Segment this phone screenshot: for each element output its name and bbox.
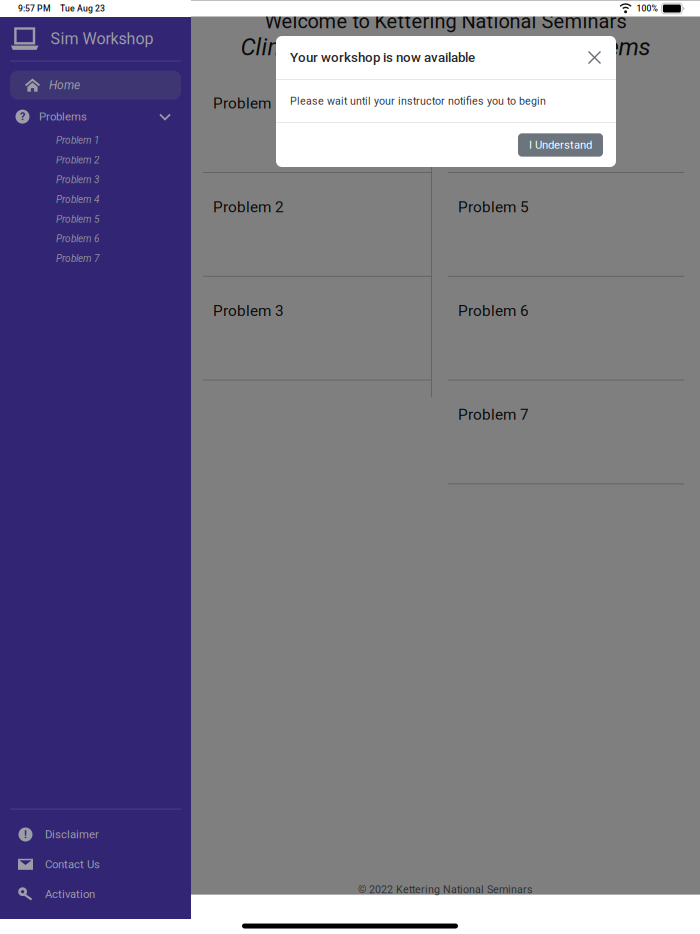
staticText: Problem 6 xyxy=(56,233,99,245)
button[interactable]: Problem 3 xyxy=(203,277,431,381)
staticText: 9:57 PM xyxy=(18,3,51,14)
staticText: ! xyxy=(24,828,27,841)
button[interactable]: Problem 2 xyxy=(203,173,431,277)
staticText: Tue Aug 23 xyxy=(60,3,105,14)
button[interactable]: Home xyxy=(0,71,191,100)
staticText: Problems xyxy=(39,110,87,123)
button[interactable]: Problem 3 xyxy=(0,170,191,190)
staticText: I Understand xyxy=(529,138,592,152)
button[interactable]: I Understand xyxy=(518,133,603,157)
button[interactable]: Problem 5 xyxy=(448,173,684,277)
button[interactable]: Problem 4 xyxy=(448,69,684,173)
staticText: Activation xyxy=(45,887,95,901)
staticText: Problem 2 xyxy=(213,198,284,216)
button[interactable]: Problem 1 xyxy=(203,69,431,173)
button[interactable]: ? xyxy=(0,104,191,130)
staticText: Clinical Simulation Workshop Problems xyxy=(240,33,650,61)
staticText: Problem 2 xyxy=(56,154,99,166)
button[interactable]: ! xyxy=(0,820,191,849)
button[interactable]: Problem 7 xyxy=(448,381,684,484)
staticText: Disclaimer xyxy=(45,828,99,841)
staticText: Welcome to Kettering National Seminars xyxy=(264,10,626,33)
staticText: Problem 3 xyxy=(213,302,284,320)
staticText: © 2022 Kettering National Seminars xyxy=(358,883,533,896)
staticText: Problem 5 xyxy=(458,198,529,216)
button[interactable]: Problem 4 xyxy=(0,190,191,209)
button[interactable]: Problem 2 xyxy=(0,150,191,170)
staticText: Please wait until your instructor notifi… xyxy=(290,95,546,107)
staticText: ? xyxy=(20,110,25,123)
button[interactable]: Problem 1 xyxy=(0,131,191,150)
staticText: Problem 5 xyxy=(56,213,99,225)
button[interactable]: Problem 5 xyxy=(0,209,191,229)
staticText: 100% xyxy=(637,3,658,14)
staticText: Problem 6 xyxy=(458,302,529,320)
staticText: Problem 4 xyxy=(56,194,99,205)
staticText: Contact Us xyxy=(45,858,100,871)
button[interactable]: Activation xyxy=(0,879,191,909)
button[interactable]: Problem 7 xyxy=(0,249,191,268)
staticText: Sim Workshop xyxy=(50,29,153,48)
button[interactable]: Problem 6 xyxy=(0,229,191,249)
staticText: Problem 1 xyxy=(213,94,284,112)
staticText: Problem 3 xyxy=(56,174,99,186)
button[interactable]: Close xyxy=(584,47,605,68)
staticText: Problem 1 xyxy=(56,135,99,146)
staticText: Home xyxy=(49,78,80,92)
button[interactable]: Contact Us xyxy=(0,849,191,879)
button[interactable]: Problem 6 xyxy=(448,277,684,381)
staticText: Your workshop is now available xyxy=(290,50,475,65)
staticText: Problem 4 xyxy=(458,94,529,112)
staticText: Problem 7 xyxy=(458,406,529,424)
staticText: Problem 7 xyxy=(56,253,99,264)
